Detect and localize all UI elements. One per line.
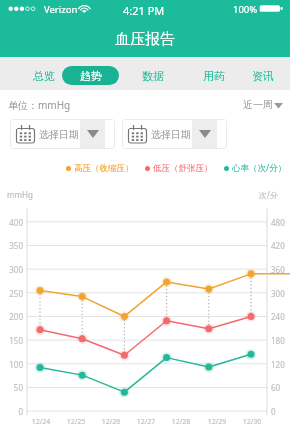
staticText: 120 [271,359,285,370]
staticText: 480 [271,217,285,228]
staticText: 12/26 [97,417,125,427]
staticText: 100 [0,359,23,370]
button[interactable]: Pick date [122,119,227,149]
staticText: 150 [0,335,23,346]
staticText: 12/27 [132,417,160,427]
staticText: 选择日期 [39,128,79,141]
button[interactable]: Pick date [10,119,115,149]
staticText: 240 [271,311,285,322]
other: Pick date [15,124,36,144]
staticText: 总览 [33,69,55,83]
staticText: 300 [0,264,23,275]
staticText: 趋势 [80,69,102,83]
staticText: 低压（舒张压） [153,163,213,174]
button[interactable]: 用药 [194,64,234,87]
staticText: 250 [0,288,23,299]
staticText: 0 [271,406,276,417]
staticText: 60 [271,382,281,393]
staticText: 0 [0,406,23,417]
staticText: 4:21 PM [123,3,165,18]
staticText: 近一周 [243,98,273,111]
staticText: 100% [233,3,258,16]
staticText: 次/分 [259,189,278,200]
staticText: 12/30 [238,417,266,427]
staticText: 单位：mmHg [8,98,71,112]
staticText: 资讯 [252,69,274,83]
button[interactable]: 近一周 [243,98,284,111]
other: Pick date [127,124,148,144]
staticText: mmHg [7,189,33,200]
staticText: 12/24 [27,417,55,427]
staticText: 350 [0,240,23,251]
staticText: 12/25 [62,417,90,427]
button[interactable]: 总览 [24,64,64,87]
staticText: Verizon [44,3,78,16]
staticText: 高压（收缩压） [74,163,134,174]
button[interactable]: 资讯 [243,64,283,87]
staticText: 用药 [203,69,225,83]
button[interactable]: 心率（次/分） [224,162,287,174]
button[interactable]: 趋势 [62,66,119,85]
button[interactable]: 高压（收缩压） [66,163,134,174]
staticText: 选择日期 [151,128,191,141]
button[interactable]: 低压（舒张压） [145,163,213,174]
staticText: 50 [0,382,23,393]
staticText: 180 [271,335,285,346]
staticText: 心率（次/分） [232,162,287,174]
staticText: 200 [0,311,23,322]
staticText: 420 [271,240,285,251]
staticText: 12/29 [203,417,231,427]
staticText: 血压报告 [115,30,175,49]
staticText: 12/28 [167,417,195,427]
staticText: 400 [0,217,23,228]
staticText: 300 [271,288,285,299]
staticText: 360 [271,264,285,275]
button[interactable]: 数据 [133,64,173,87]
staticText: 数据 [142,69,164,83]
